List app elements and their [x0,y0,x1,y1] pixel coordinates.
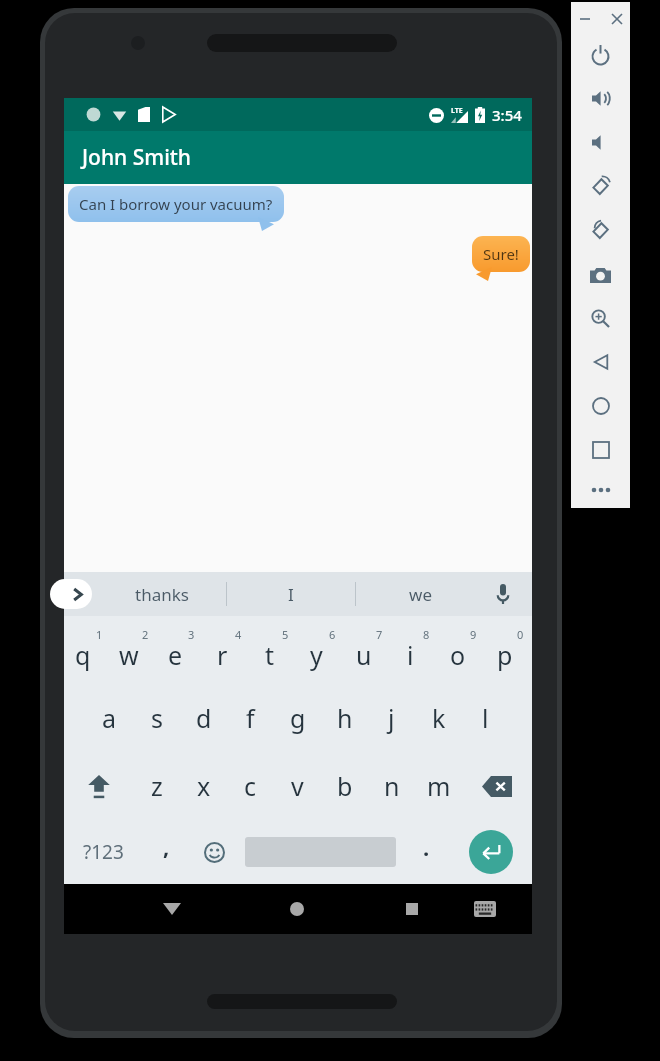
button[interactable]: Can I borrow your vacuum? [68,186,284,231]
button[interactable]: i [391,616,438,684]
staticText: 5 [282,627,289,642]
staticText: s [151,701,163,735]
staticText: LTE [451,106,463,116]
button[interactable]: Enter [450,820,532,884]
staticText: k [432,701,446,735]
button[interactable]: b [321,752,368,820]
staticText: n [384,769,400,803]
button[interactable]: Power [571,32,630,76]
button[interactable]: x [180,752,227,820]
button[interactable]: Home [275,887,319,931]
button[interactable]: k [415,684,462,752]
staticText: I [288,583,294,606]
button[interactable]: o [438,616,485,684]
staticText: i [407,638,414,672]
staticText: l [482,701,489,735]
button[interactable]: Sure! [472,236,530,281]
button[interactable]: t [250,616,297,684]
button[interactable]: f [227,684,274,752]
button[interactable]: Keyboard [465,889,505,929]
button[interactable]: w [110,616,156,684]
button[interactable]: Recent apps [390,887,434,931]
staticText: e [168,638,183,672]
staticText: 3 [188,627,195,642]
button[interactable]: Space [238,820,402,884]
staticText: 9 [470,627,477,642]
staticText: 4 [235,627,242,642]
button[interactable]: Emoji [190,820,238,884]
staticText: p [497,638,513,672]
staticText: 8 [423,627,430,642]
staticText: g [290,701,306,735]
staticText: b [337,769,353,803]
staticText: u [356,638,372,672]
button[interactable]: More [571,472,630,508]
button[interactable]: Zoom [571,296,630,340]
staticText: . [423,832,430,862]
button[interactable]: v [274,752,321,820]
button[interactable]: Volume up [571,76,630,120]
button[interactable]: Backspace [462,752,532,820]
button[interactable]: Shift [64,752,133,820]
button[interactable]: g [274,684,321,752]
staticText: a [102,701,117,735]
staticText: q [75,638,91,672]
button[interactable]: Back [150,887,194,931]
button[interactable]: r [203,616,250,684]
button[interactable]: p [485,616,532,684]
button[interactable]: h [321,684,368,752]
staticText: c [244,769,257,803]
staticText: t [265,638,275,672]
staticText: j [388,701,395,735]
button[interactable]: Home [571,384,630,428]
button[interactable]: s [133,684,180,752]
button[interactable]: q [64,616,110,684]
button[interactable]: Back [571,340,630,384]
staticText: 7 [376,627,383,642]
button[interactable]: More suggestions [50,579,92,609]
button[interactable]: Minimize [574,8,596,30]
button[interactable]: z [133,752,180,820]
button[interactable]: e [156,616,203,684]
button[interactable]: we [356,572,484,616]
staticText: w [119,638,139,672]
button[interactable]: j [368,684,415,752]
staticText: x [197,769,211,803]
button[interactable]: Rotate left [571,164,630,208]
staticText: o [450,638,466,672]
staticText: y [310,638,323,672]
button[interactable]: a [86,684,133,752]
button[interactable]: l [462,684,509,752]
staticText: z [151,769,163,803]
button[interactable]: y [297,616,344,684]
button[interactable]: I [227,572,355,616]
button[interactable]: thanks [98,572,226,616]
staticText: , [163,831,170,861]
staticText: thanks [135,583,189,606]
button[interactable]: n [368,752,415,820]
button[interactable]: Volume down [571,120,630,164]
staticText: 3:54 [492,105,522,125]
button[interactable]: , [142,820,190,884]
button[interactable]: d [180,684,227,752]
button[interactable]: John Smith [64,131,532,184]
staticText: 0 [517,627,524,642]
button[interactable]: ?123 [64,820,142,884]
button[interactable]: Screenshot [571,252,630,296]
staticText: ?123 [83,839,124,865]
staticText: 2 [142,627,149,642]
button[interactable]: . [402,820,450,884]
staticText: 1 [96,627,103,642]
staticText: r [217,638,228,672]
button[interactable]: Overview [571,428,630,472]
staticText: Can I borrow your vacuum? [79,194,273,214]
button[interactable]: m [415,752,462,820]
button[interactable]: u [344,616,391,684]
staticText: 6 [329,627,336,642]
button[interactable]: Close [606,8,628,30]
button[interactable]: Voice input [488,579,518,609]
button[interactable]: c [227,752,274,820]
staticText: Sure! [483,244,519,264]
button[interactable]: Rotate right [571,208,630,252]
staticText: d [196,701,212,735]
